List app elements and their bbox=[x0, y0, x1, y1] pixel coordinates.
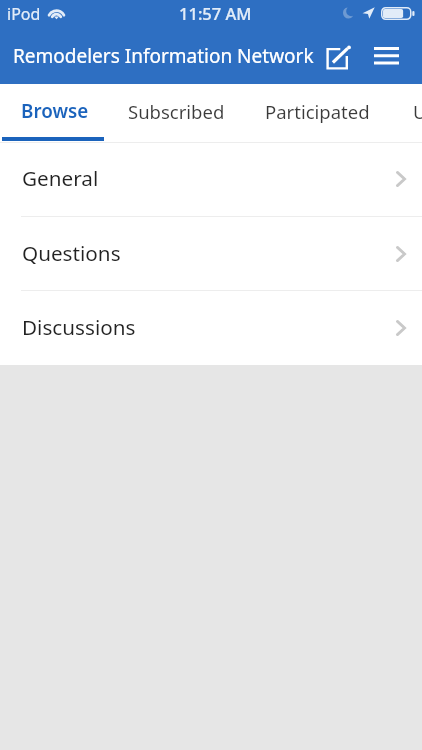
button[interactable]: U bbox=[400, 84, 422, 140]
staticText: Discussions bbox=[22, 313, 136, 341]
staticText: Participated bbox=[265, 99, 370, 124]
staticText: Questions bbox=[22, 239, 121, 267]
staticText: Remodelers Information Network bbox=[13, 43, 314, 69]
staticText: iPod bbox=[7, 3, 41, 25]
button[interactable]: Participated bbox=[253, 84, 382, 140]
staticText: Browse bbox=[21, 98, 89, 124]
button[interactable]: Compose new post bbox=[319, 40, 359, 80]
button[interactable]: Subscribed bbox=[113, 84, 240, 140]
staticText: 11:57 AM bbox=[179, 2, 252, 24]
button[interactable]: Questions bbox=[0, 217, 422, 290]
button[interactable]: Menu bbox=[366, 36, 406, 76]
staticText: Subscribed bbox=[128, 99, 225, 124]
button[interactable]: General bbox=[0, 142, 422, 216]
button[interactable]: Browse bbox=[7, 84, 102, 140]
button[interactable]: Discussions bbox=[0, 291, 422, 365]
staticText: U bbox=[413, 99, 422, 124]
staticText: General bbox=[22, 164, 99, 192]
